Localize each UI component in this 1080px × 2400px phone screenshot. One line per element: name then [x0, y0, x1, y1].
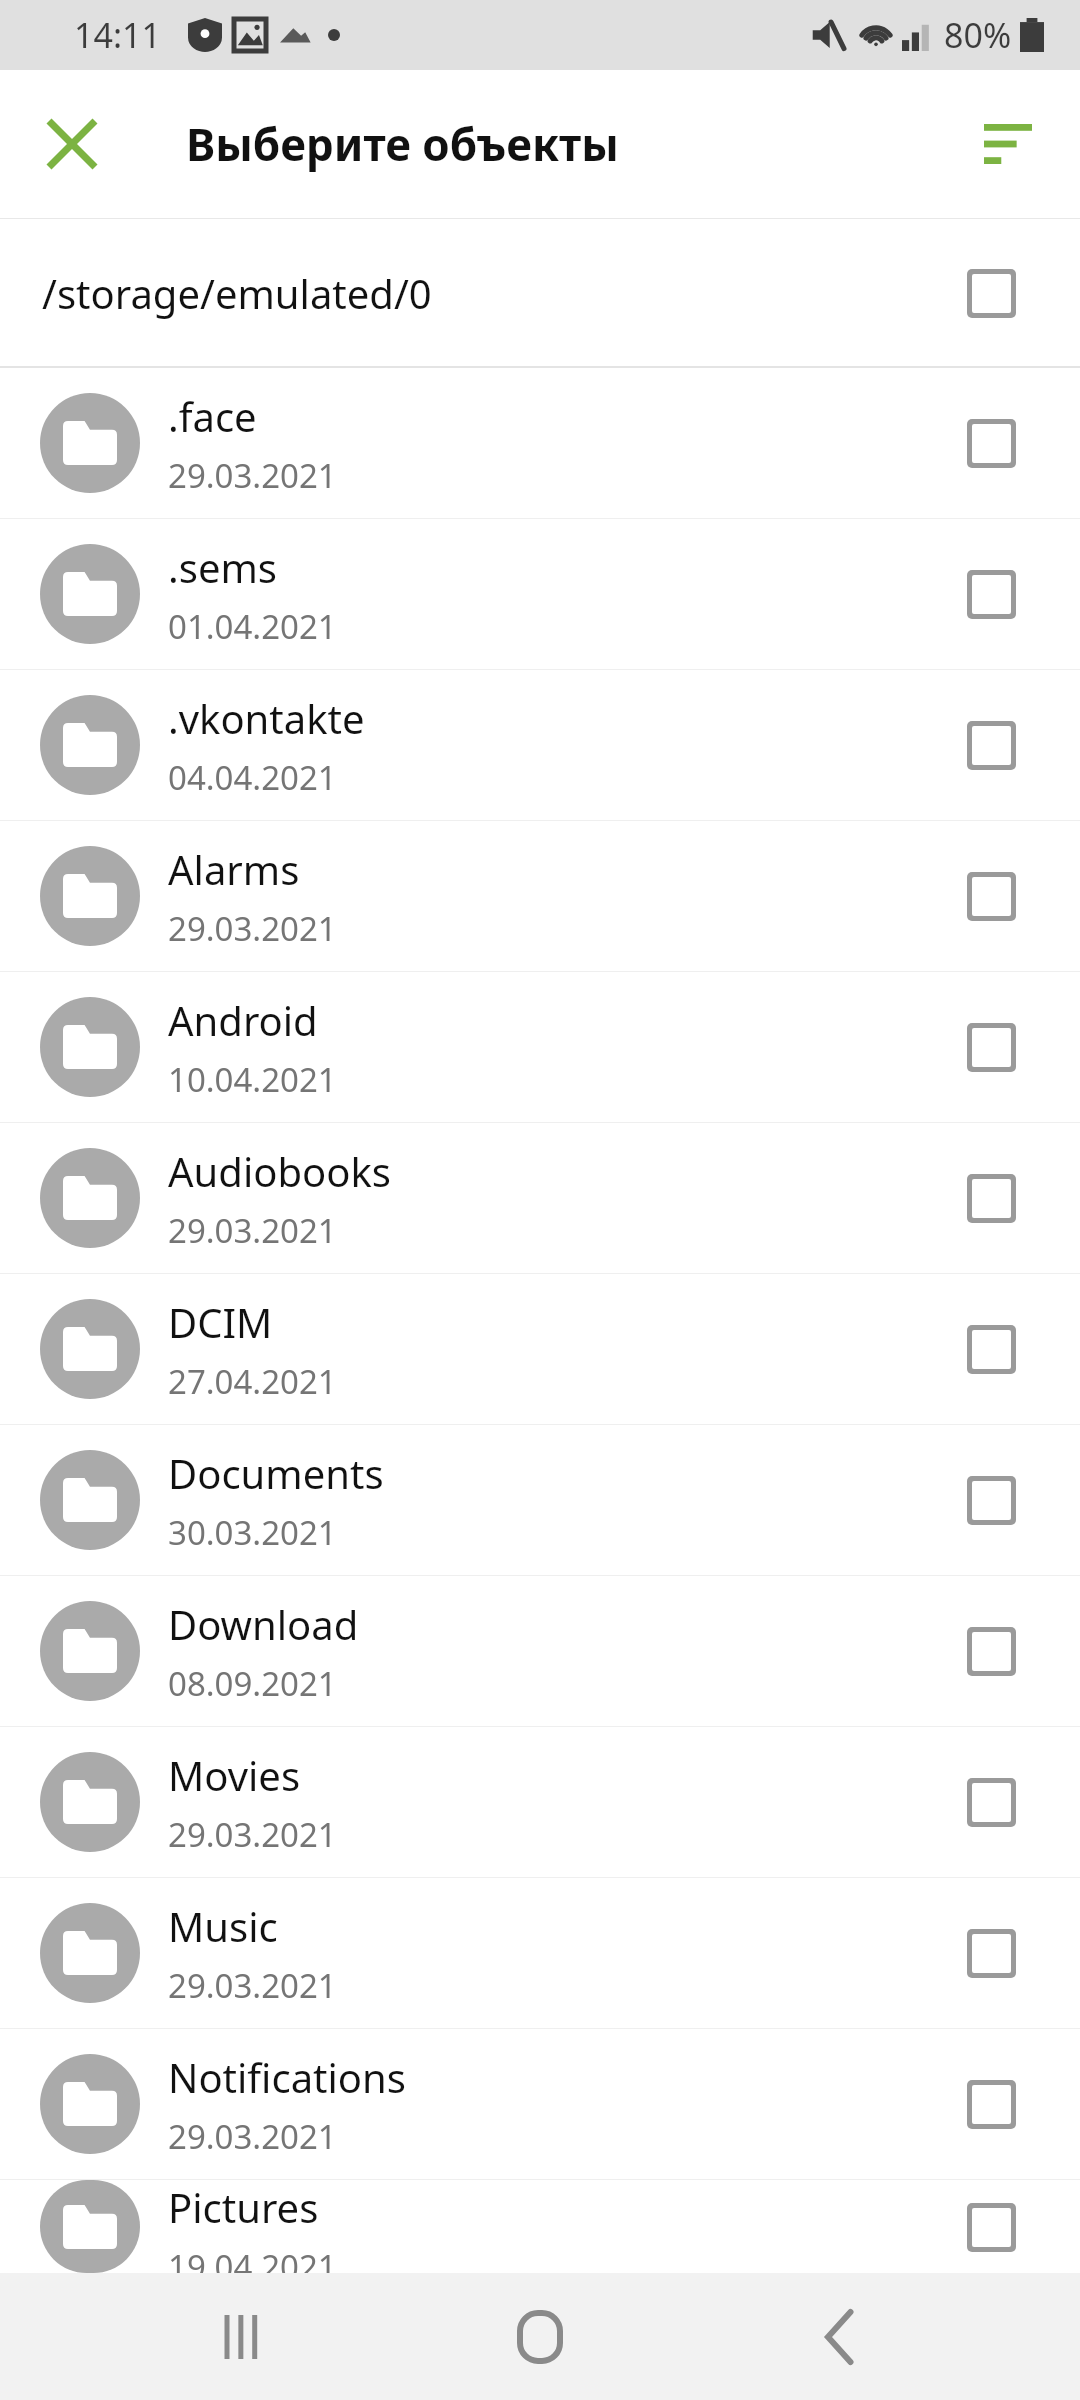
button[interactable]: Download	[0, 1576, 1080, 1726]
button[interactable]: Alarms	[0, 821, 1080, 971]
staticText: 29.03.2021	[168, 906, 337, 951]
staticText: DCIM	[168, 1295, 273, 1349]
staticText: 29.03.2021	[168, 453, 337, 498]
staticText: 29.03.2021	[168, 1812, 337, 1857]
button[interactable]: Music	[0, 1878, 1080, 2028]
staticText: 04.04.2021	[168, 755, 337, 800]
staticText: .vkontakte	[168, 691, 365, 745]
button[interactable]: Notifications	[0, 2029, 1080, 2179]
staticText: 14:11	[74, 12, 161, 58]
staticText: Alarms	[168, 842, 300, 896]
button[interactable]: Sort	[960, 96, 1056, 192]
staticText: 19.04.2021	[168, 2244, 337, 2273]
staticText: .sems	[168, 540, 277, 594]
button[interactable]: DCIM	[0, 1274, 1080, 1424]
staticText: Documents	[168, 1446, 384, 1500]
staticText: Выберите объекты	[186, 114, 619, 174]
button[interactable]: Home	[480, 2277, 600, 2397]
staticText: Audiobooks	[168, 1144, 391, 1198]
button[interactable]: .sems	[0, 519, 1080, 669]
button[interactable]: Select	[952, 555, 1030, 633]
button[interactable]: .face	[0, 368, 1080, 518]
button[interactable]: /storage/emulated/0	[0, 219, 1080, 366]
staticText: Download	[168, 1597, 359, 1651]
staticText: 80%	[944, 12, 1012, 58]
button[interactable]: Select	[952, 857, 1030, 935]
button[interactable]: Select	[952, 706, 1030, 784]
staticText: Android	[168, 993, 318, 1047]
button[interactable]: Select	[952, 2065, 1030, 2143]
button[interactable]: Close	[24, 96, 120, 192]
staticText: Pictures	[168, 2180, 319, 2234]
button[interactable]: Select	[952, 1461, 1030, 1539]
button[interactable]: Back	[780, 2277, 900, 2397]
staticText: /storage/emulated/0	[42, 266, 432, 320]
button[interactable]: Audiobooks	[0, 1123, 1080, 1273]
button[interactable]: Select	[952, 2188, 1030, 2266]
staticText: Music	[168, 1899, 278, 1953]
staticText: 29.03.2021	[168, 2114, 337, 2159]
button[interactable]: Recents	[180, 2277, 300, 2397]
button[interactable]: Select	[952, 1763, 1030, 1841]
staticText: 30.03.2021	[168, 1510, 337, 1555]
button[interactable]: Pictures	[0, 2180, 1080, 2273]
button[interactable]: Select	[952, 1008, 1030, 1086]
button[interactable]: Documents	[0, 1425, 1080, 1575]
staticText: Movies	[168, 1748, 301, 1802]
button[interactable]: Select	[952, 1612, 1030, 1690]
button[interactable]: Movies	[0, 1727, 1080, 1877]
staticText: 10.04.2021	[168, 1057, 337, 1102]
staticText: 01.04.2021	[168, 604, 337, 649]
staticText: 29.03.2021	[168, 1963, 337, 2008]
button[interactable]: .vkontakte	[0, 670, 1080, 820]
button[interactable]: Select	[952, 1310, 1030, 1388]
staticText: Notifications	[168, 2050, 406, 2104]
button[interactable]: Select	[952, 1159, 1030, 1237]
staticText: .face	[168, 389, 257, 443]
button[interactable]: Android	[0, 972, 1080, 1122]
button[interactable]: Select	[952, 254, 1030, 332]
staticText: 29.03.2021	[168, 1208, 337, 1253]
staticText: 08.09.2021	[168, 1661, 337, 1706]
staticText: 27.04.2021	[168, 1359, 337, 1404]
button[interactable]: Select	[952, 1914, 1030, 1992]
button[interactable]: Select	[952, 404, 1030, 482]
